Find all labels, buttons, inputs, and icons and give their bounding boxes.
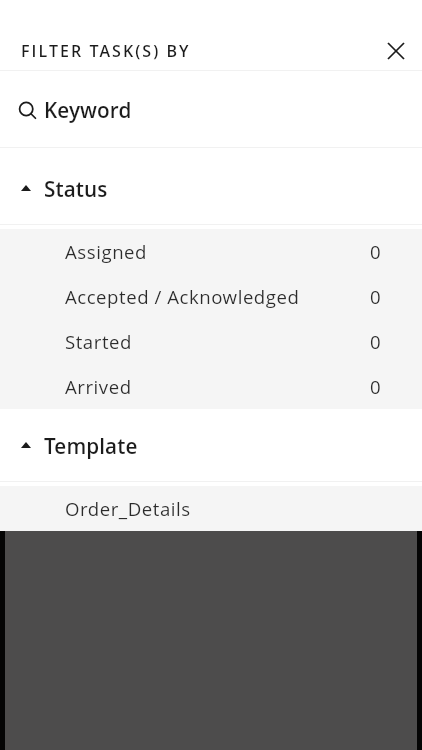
staticText: 0	[370, 239, 381, 264]
button[interactable]: Status	[0, 148, 422, 224]
button[interactable]: Arrived	[0, 364, 422, 409]
staticText: Status	[44, 175, 108, 203]
staticText: Accepted / Acknowledged	[65, 284, 300, 309]
staticText: Order_Details	[65, 496, 191, 521]
staticText: FILTER TASK(S) BY	[21, 40, 191, 62]
staticText: Keyword	[44, 96, 132, 124]
button[interactable]: Close	[374, 31, 418, 70]
staticText: 0	[370, 374, 381, 399]
staticText: Template	[44, 432, 138, 460]
button[interactable]: Template	[0, 409, 422, 481]
staticText: Arrived	[65, 374, 132, 399]
button[interactable]: Accepted / Acknowledged	[0, 274, 422, 319]
staticText: 0	[370, 284, 381, 309]
staticText: 0	[370, 329, 381, 354]
button[interactable]: Started	[0, 319, 422, 364]
button[interactable]: Order_Details	[0, 486, 422, 531]
staticText: Started	[65, 329, 132, 354]
button[interactable]: Keyword	[0, 71, 422, 147]
staticText: Assigned	[65, 239, 148, 264]
button[interactable]: Assigned	[0, 229, 422, 274]
